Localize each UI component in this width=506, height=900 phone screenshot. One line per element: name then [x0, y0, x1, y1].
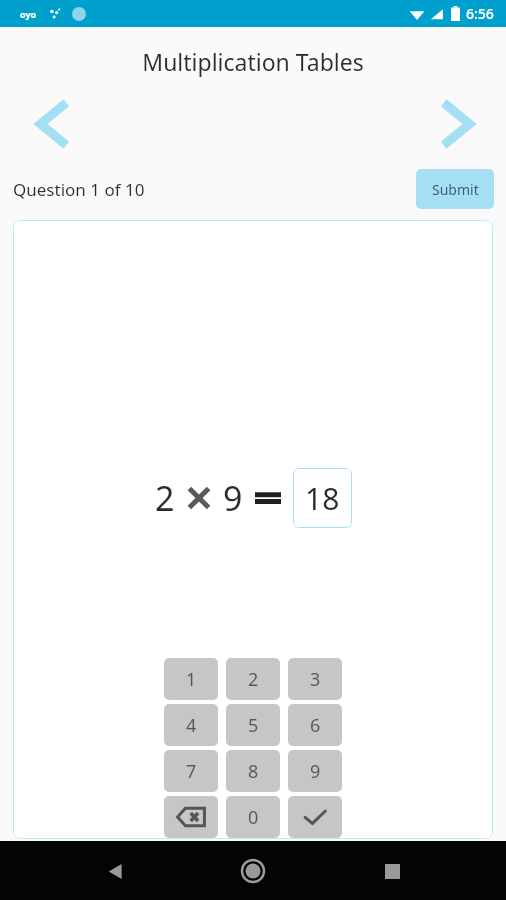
staticText: 0	[248, 805, 259, 830]
button[interactable]: 7	[164, 750, 218, 792]
staticText: 6	[310, 713, 321, 738]
button[interactable]: Confirm	[288, 796, 342, 838]
staticText: 4	[186, 713, 197, 738]
staticText: 3	[310, 667, 321, 692]
button[interactable]: 4	[164, 704, 218, 746]
button[interactable]: Previous	[26, 98, 78, 150]
button[interactable]: 18	[293, 468, 352, 528]
button[interactable]: Next	[432, 98, 484, 150]
button[interactable]: 6	[288, 704, 342, 746]
button[interactable]: 5	[226, 704, 280, 746]
staticText: 2	[155, 475, 175, 521]
staticText: 9	[223, 475, 243, 521]
staticText: 8	[248, 759, 259, 784]
staticText: 9	[310, 759, 321, 784]
button[interactable]: 2	[226, 658, 280, 700]
staticText: 2	[248, 667, 259, 692]
button[interactable]: 3	[288, 658, 342, 700]
staticText: 1	[186, 667, 197, 692]
staticText: 5	[248, 713, 259, 738]
button[interactable]: 9	[288, 750, 342, 792]
button[interactable]: 8	[226, 750, 280, 792]
button[interactable]: Home	[229, 847, 277, 895]
button[interactable]: 1	[164, 658, 218, 700]
button[interactable]: Submit	[416, 169, 494, 209]
staticText: 6:56	[466, 4, 494, 23]
staticText: Submit	[432, 180, 479, 199]
button[interactable]: 0	[226, 796, 280, 838]
staticText: 7	[186, 759, 197, 784]
button[interactable]: Back	[91, 847, 139, 895]
staticText: 18	[305, 478, 340, 519]
button[interactable]: Recents	[368, 847, 416, 895]
staticText: oyo	[20, 8, 37, 20]
staticText: Question 1 of 10	[13, 178, 145, 201]
button[interactable]: Backspace	[164, 796, 218, 838]
staticText: Multiplication Tables	[0, 46, 506, 77]
